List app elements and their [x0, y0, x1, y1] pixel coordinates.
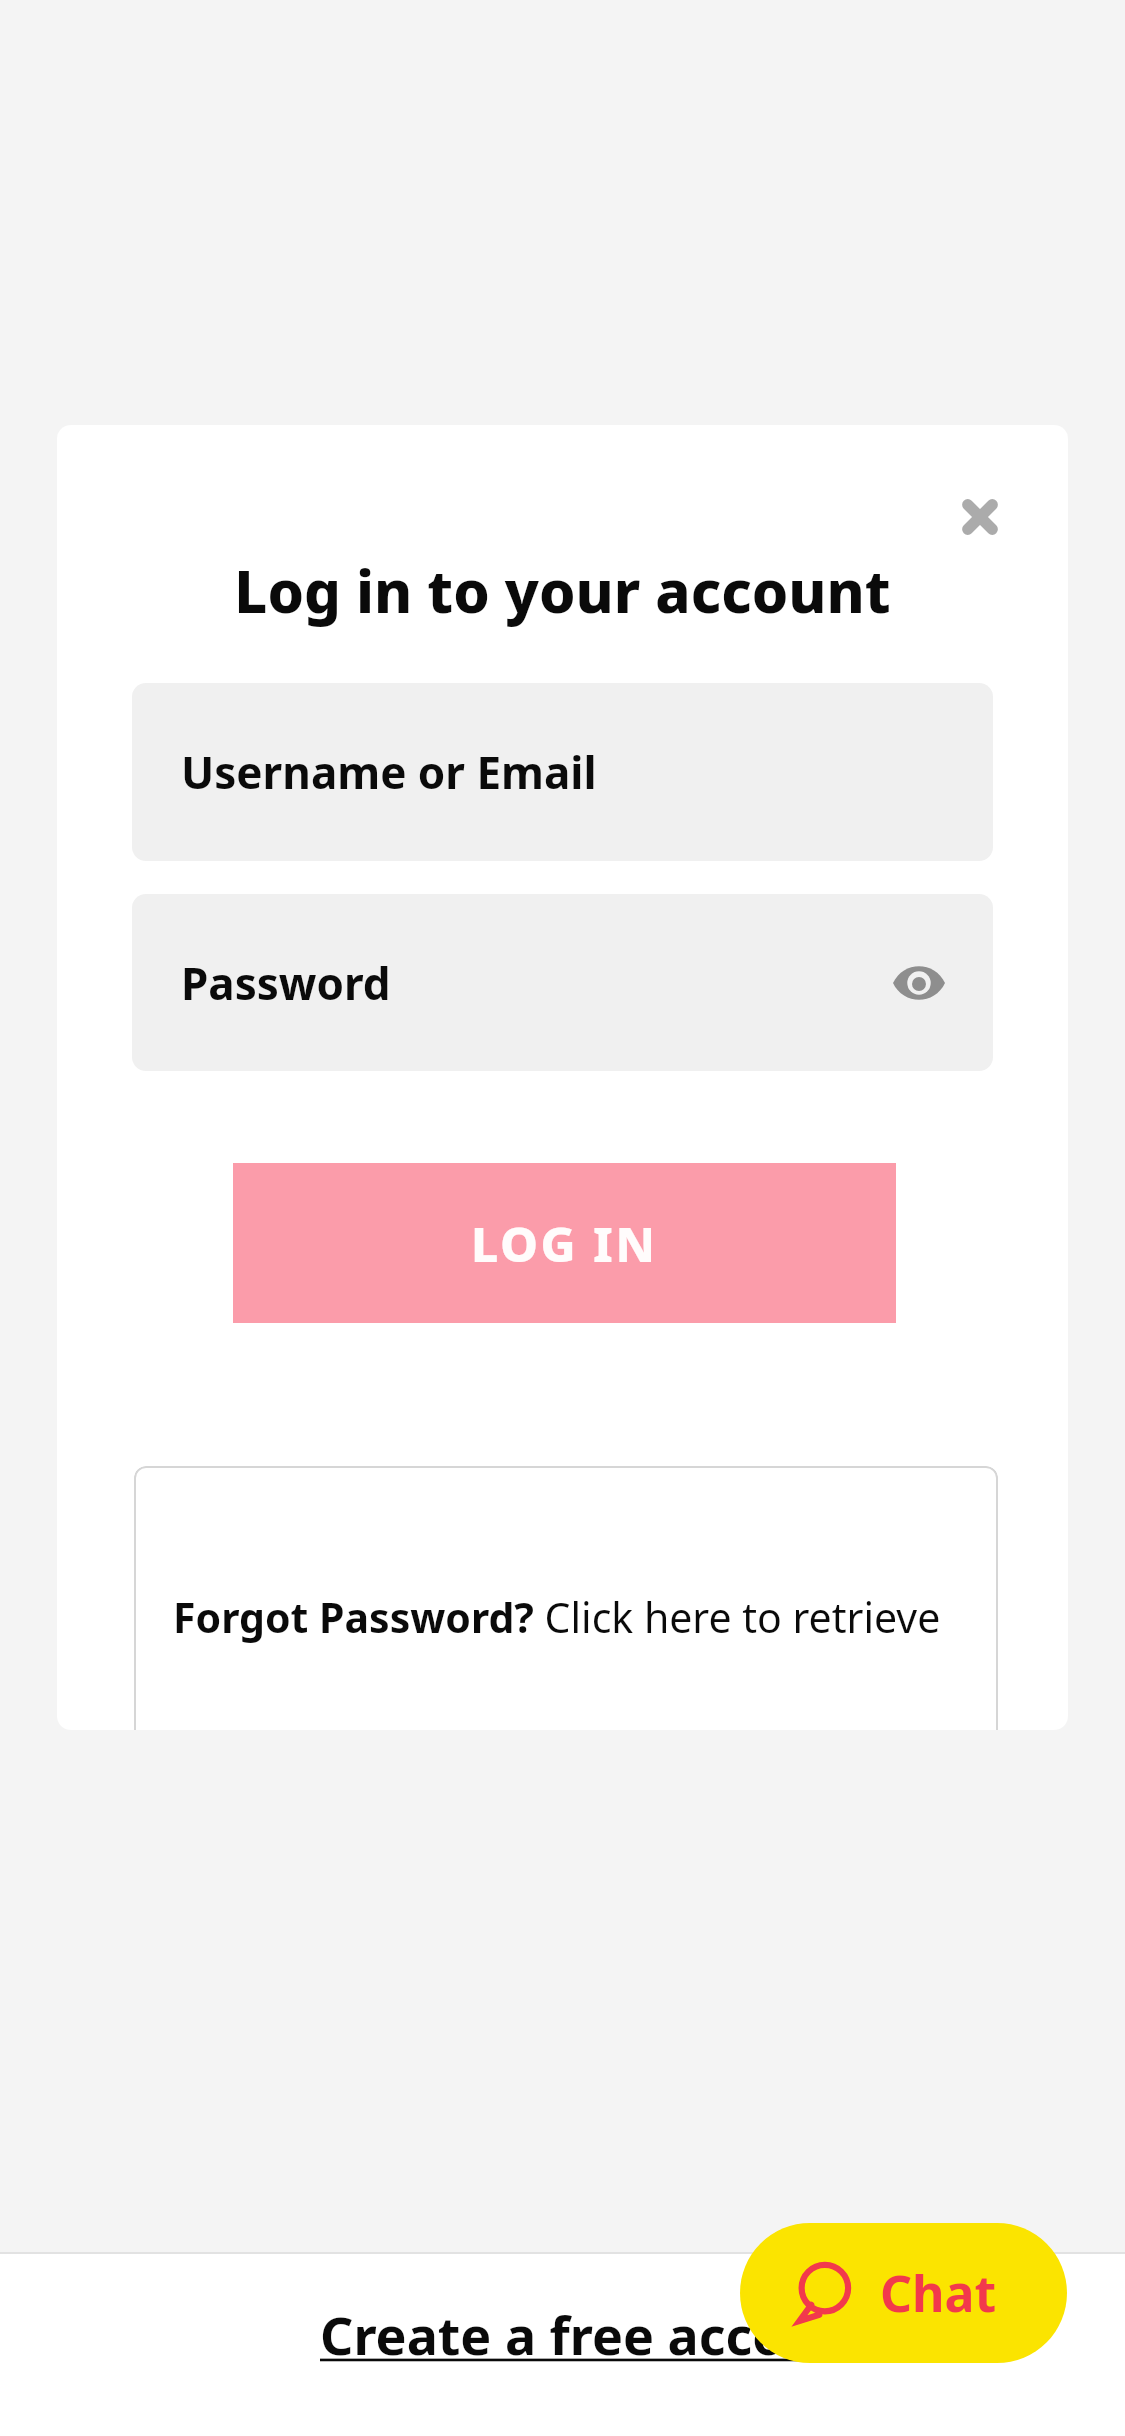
staticText: Password [181, 953, 391, 1013]
staticText: LOG IN [471, 1211, 658, 1276]
button[interactable]: Forgot Password? Click here to retrieve [134, 1466, 998, 1730]
button[interactable]: LOG IN [233, 1163, 896, 1323]
button[interactable]: Create a free account [318, 2295, 877, 2374]
button[interactable]: Chat [740, 2223, 1067, 2363]
button[interactable]: Show password [883, 947, 955, 1019]
staticText: Username or Email [181, 742, 597, 802]
button[interactable]: Close [941, 478, 1019, 556]
staticText: Forgot Password? Click here to retrieve [173, 1589, 941, 1645]
staticText: Chat [880, 2259, 997, 2327]
staticText: Log in to your account [87, 551, 1038, 630]
staticText: Create a free account [320, 2299, 875, 2370]
button[interactable]: Username or Email [132, 683, 993, 861]
button[interactable]: Password [132, 894, 993, 1071]
